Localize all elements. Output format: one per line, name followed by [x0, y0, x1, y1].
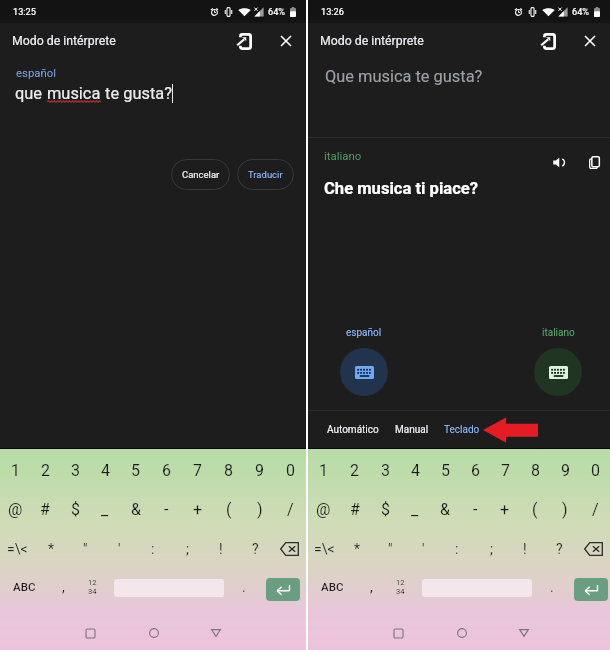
button[interactable]: 12: [386, 568, 414, 605]
button[interactable]: _: [400, 490, 430, 529]
button[interactable]: !: [508, 529, 542, 568]
button[interactable]: =\<: [0, 529, 34, 568]
button[interactable]: Manual: [395, 416, 429, 444]
staticText: italiano: [542, 327, 575, 339]
button[interactable]: Borrar: [272, 529, 306, 568]
button[interactable]: *: [34, 529, 68, 568]
button[interactable]: @: [0, 490, 30, 529]
button[interactable]: &: [120, 490, 151, 529]
staticText: 8: [531, 461, 540, 480]
staticText: !: [219, 541, 223, 557]
button[interactable]: 4: [400, 450, 430, 490]
button[interactable]: Intro: [574, 578, 608, 601]
button[interactable]: 0: [580, 450, 610, 490]
button[interactable]: Inicio: [140, 619, 168, 647]
button[interactable]: :: [440, 529, 474, 568]
button[interactable]: Copiar: [581, 149, 607, 175]
button[interactable]: -: [460, 490, 490, 529]
button[interactable]: $: [60, 490, 90, 529]
staticText: =\<: [7, 541, 28, 557]
button[interactable]: ABC: [308, 568, 356, 605]
button[interactable]: Traducir: [237, 159, 294, 190]
button[interactable]: !: [204, 529, 238, 568]
button[interactable]: ABC: [0, 568, 48, 605]
button[interactable]: 7: [490, 450, 520, 490]
button[interactable]: 8: [520, 450, 550, 490]
button[interactable]: ?: [542, 529, 576, 568]
button[interactable]: Teclado: [444, 416, 480, 444]
staticText: 12: [396, 578, 405, 587]
button[interactable]: Atrás: [510, 619, 538, 647]
button[interactable]: ,: [358, 568, 384, 605]
button[interactable]: Cerrar: [575, 26, 605, 56]
button[interactable]: /: [275, 490, 306, 529]
button[interactable]: -: [151, 490, 182, 529]
button[interactable]: 1: [0, 450, 30, 490]
button[interactable]: .: [540, 568, 564, 605]
button[interactable]: 8: [213, 450, 244, 490]
button[interactable]: 2: [30, 450, 60, 490]
button[interactable]: _: [90, 490, 120, 529]
button[interactable]: ': [407, 529, 440, 568]
button[interactable]: ): [244, 490, 275, 529]
button[interactable]: ;: [474, 529, 508, 568]
staticText: ": [388, 541, 393, 557]
button[interactable]: Escuchar: [546, 149, 572, 175]
button[interactable]: +: [490, 490, 520, 529]
button[interactable]: Automático: [327, 416, 379, 444]
button[interactable]: #: [339, 490, 370, 529]
button[interactable]: 4: [90, 450, 120, 490]
button[interactable]: ': [102, 529, 136, 568]
button[interactable]: Teclado español: [340, 348, 388, 396]
button[interactable]: 12: [78, 568, 106, 605]
button[interactable]: 7: [182, 450, 213, 490]
button[interactable]: ": [68, 529, 102, 568]
button[interactable]: Inicio: [448, 619, 476, 647]
button[interactable]: Recientes: [76, 619, 104, 647]
staticText: ,: [62, 579, 65, 595]
button[interactable]: 9: [550, 450, 580, 490]
staticText: @: [8, 500, 23, 519]
button[interactable]: Cancelar: [171, 159, 230, 190]
button[interactable]: (: [520, 490, 550, 529]
button[interactable]: $: [370, 490, 400, 529]
button[interactable]: *: [341, 529, 374, 568]
button[interactable]: #: [30, 490, 60, 529]
button[interactable]: :: [136, 529, 170, 568]
button[interactable]: =\<: [308, 529, 341, 568]
button[interactable]: 3: [370, 450, 400, 490]
staticText: $: [381, 500, 390, 519]
button[interactable]: Cerrar: [271, 26, 301, 56]
button[interactable]: 2: [339, 450, 370, 490]
button[interactable]: 6: [151, 450, 182, 490]
button[interactable]: ": [374, 529, 407, 568]
button[interactable]: 1: [308, 450, 339, 490]
button[interactable]: Recientes: [384, 619, 412, 647]
button[interactable]: +: [182, 490, 213, 529]
button[interactable]: 0: [275, 450, 306, 490]
button[interactable]: 5: [120, 450, 151, 490]
button[interactable]: /: [580, 490, 610, 529]
button[interactable]: Enviar al teléfono: [230, 26, 260, 56]
staticText: 34: [88, 587, 97, 596]
button[interactable]: Borrar: [576, 529, 610, 568]
button[interactable]: ?: [238, 529, 272, 568]
button[interactable]: 5: [430, 450, 460, 490]
button[interactable]: Atrás: [202, 619, 230, 647]
button[interactable]: Teclado italiano: [534, 348, 582, 396]
button[interactable]: 6: [460, 450, 490, 490]
button[interactable]: (: [213, 490, 244, 529]
button[interactable]: &: [430, 490, 460, 529]
button[interactable]: .: [232, 568, 256, 605]
staticText: ": [83, 541, 88, 557]
button[interactable]: ,: [50, 568, 76, 605]
button[interactable]: Intro: [266, 578, 300, 601]
button[interactable]: 3: [60, 450, 90, 490]
button[interactable]: 9: [244, 450, 275, 490]
button[interactable]: ;: [170, 529, 204, 568]
button[interactable]: @: [308, 490, 339, 529]
button[interactable]: Enviar al teléfono: [534, 26, 564, 56]
button[interactable]: ): [550, 490, 580, 529]
